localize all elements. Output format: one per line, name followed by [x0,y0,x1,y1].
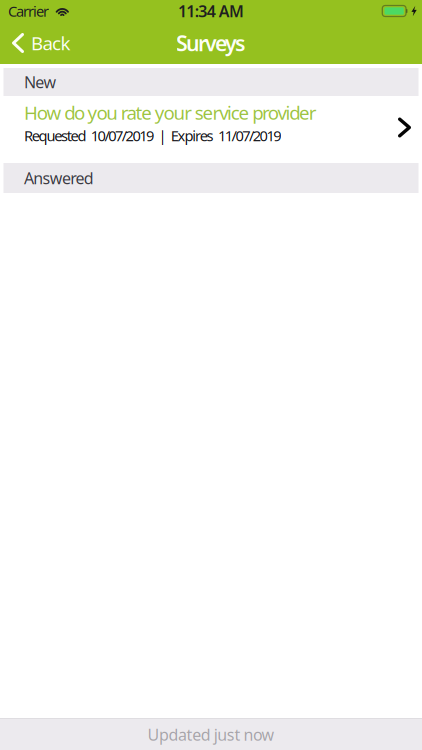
button[interactable]: Back [0,22,84,64]
staticText: 11:34 AM [178,0,244,22]
staticText: Carrier [8,1,49,21]
staticText: How do you rate your service provider [24,100,317,125]
staticText: Back [31,31,70,55]
staticText: Requested 10/07/2019 | Expires 11/07/201… [24,126,281,145]
button[interactable]: How do you rate your service provider [0,96,422,163]
staticText: Answered [24,167,94,189]
staticText: New [24,71,56,93]
staticText: Updated just now [147,724,275,745]
staticText: Surveys [176,29,246,57]
